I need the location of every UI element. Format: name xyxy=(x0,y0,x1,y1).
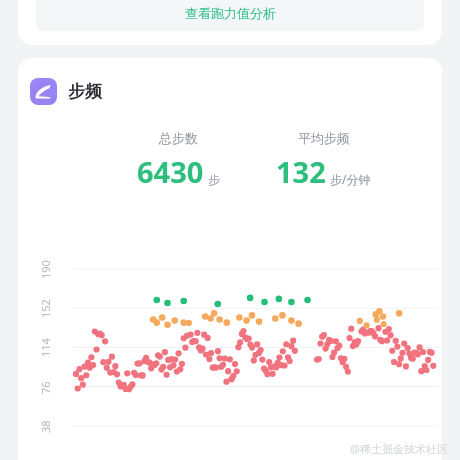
staticText: @稀土掘金技术社区 xyxy=(350,441,448,456)
staticText: 平均步频 xyxy=(298,130,350,146)
staticText: 6430 xyxy=(137,152,204,191)
staticText: 190 xyxy=(38,260,53,279)
staticText: 38 xyxy=(38,420,53,433)
button[interactable]: 查看跑力值分析 xyxy=(36,0,424,31)
staticText: 152 xyxy=(38,299,53,318)
staticText: 步 xyxy=(208,172,220,187)
staticText: 查看跑力值分析 xyxy=(185,5,276,21)
staticText: 76 xyxy=(38,381,53,394)
staticText: 114 xyxy=(38,338,53,357)
staticText: 步/分钟 xyxy=(330,171,371,187)
button[interactable]: 步频 xyxy=(30,78,102,105)
other: 步频 xyxy=(30,78,57,105)
staticText: 步频 xyxy=(68,81,102,102)
staticText: 总步数 xyxy=(159,130,198,146)
staticText: 132 xyxy=(276,152,326,191)
